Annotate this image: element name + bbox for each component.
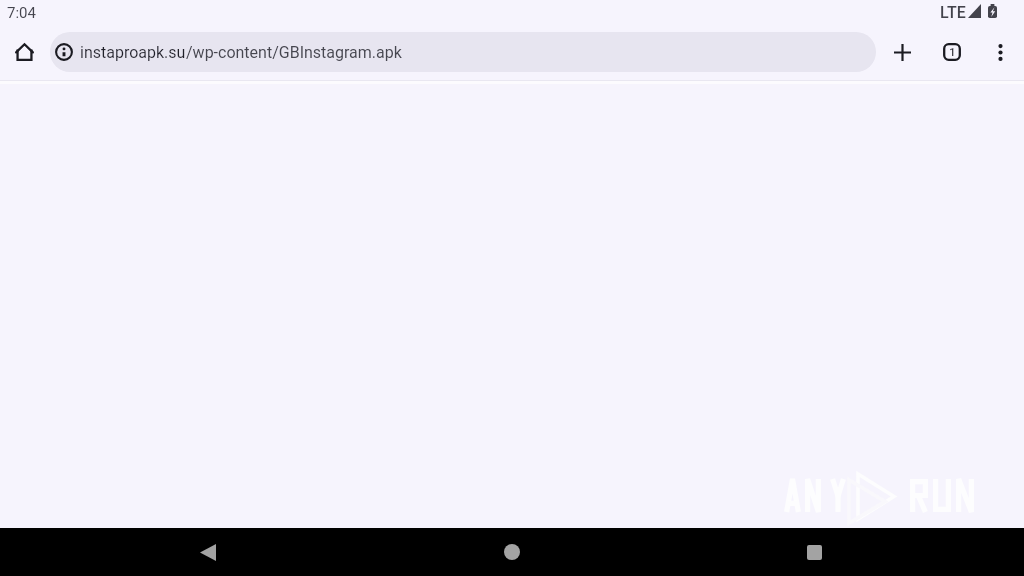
button[interactable]: instaproapk.su [50, 32, 876, 72]
button[interactable]: Home [4, 32, 44, 72]
staticText: 7:04 [7, 4, 36, 22]
button[interactable]: Recent apps [778, 528, 850, 576]
staticText: instaproapk.su [80, 43, 186, 62]
button[interactable]: Switch or close tabs, 1 open tab [932, 32, 972, 72]
staticText: /wp-content/GBInstagram.apk [186, 43, 402, 62]
button[interactable]: New tab [882, 32, 922, 72]
staticText: LTE [940, 3, 966, 22]
button[interactable]: Back [172, 528, 244, 576]
button[interactable]: Home [476, 528, 548, 576]
button[interactable]: Customize and control Chrome [980, 32, 1020, 72]
staticText: 1 [949, 46, 956, 59]
